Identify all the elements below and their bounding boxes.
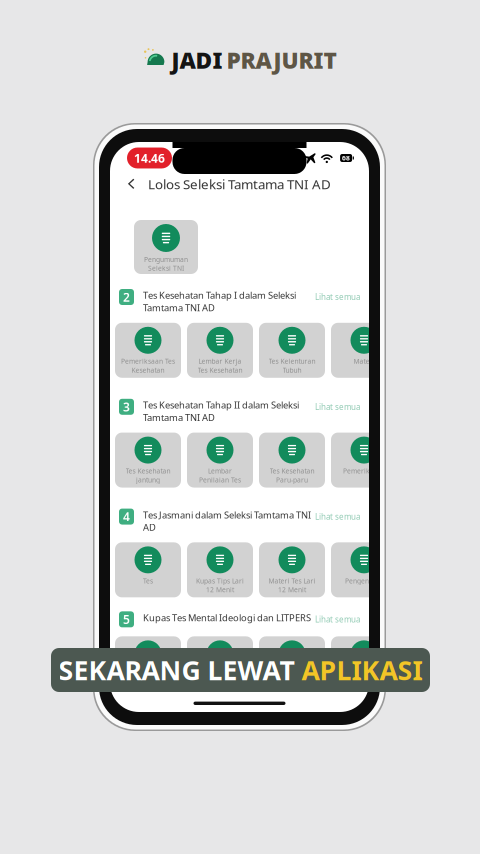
staticText: Seleksi TNI	[148, 264, 184, 273]
staticText: Tes Kesehatan Tahap II dalam Seleksi Tam…	[143, 399, 299, 424]
staticText: Materi Tes Lari	[268, 576, 315, 585]
button[interactable]: Tes Kesehatan	[259, 433, 325, 488]
button[interactable]: Latihan	[331, 636, 397, 691]
staticText: 12 Menit	[206, 585, 234, 594]
staticText: PRAJURIT	[226, 45, 336, 75]
staticText: Tes Kesehatan Tahap I dalam Seleksi Tamt…	[143, 289, 296, 314]
button[interactable]: Tes Mental	[115, 636, 181, 691]
staticText: Kupas Tes Mental Ideologi dan LITPERS	[143, 611, 311, 624]
staticText: Pengenalan	[345, 576, 383, 585]
staticText: Tes Jasmani dalam Seleksi Tamtama TNI AD	[143, 509, 311, 533]
staticText: Lembar	[208, 467, 232, 475]
staticText: Tes	[143, 576, 153, 585]
button[interactable]: Materi LITPERS	[187, 636, 253, 691]
staticText: 5	[123, 611, 130, 627]
button[interactable]: Lihat semua	[315, 509, 360, 525]
button[interactable]: Tips Lolos	[259, 636, 325, 691]
staticText: Penilaian Tes	[199, 475, 241, 484]
staticText: Tubuh	[282, 366, 301, 374]
staticText: 3	[123, 399, 130, 415]
button[interactable]: Kupas Tips Lari	[187, 542, 253, 597]
staticText: SEKARANG LEWAT	[58, 652, 301, 688]
staticText: Materi	[353, 357, 374, 366]
staticText: Pemeriksaan Tes	[121, 357, 175, 366]
staticText: Tes Kelenturan	[268, 357, 315, 366]
button[interactable]: Tes Kesehatan	[115, 433, 181, 488]
button[interactable]: Materi Tes Lari	[259, 542, 325, 597]
button[interactable]: Pemeriksaan Tes	[115, 323, 181, 378]
button[interactable]: Materi	[331, 323, 397, 378]
button[interactable]: Back	[118, 171, 144, 197]
staticText: Lihat semua	[315, 401, 360, 412]
staticText: 2	[123, 289, 130, 305]
staticText: Tes Mental	[131, 670, 165, 679]
staticText: jantung	[136, 475, 160, 484]
staticText: Tes Kesehatan	[197, 366, 242, 374]
button[interactable]: Lihat semua	[315, 611, 360, 627]
button[interactable]: Lihat semua	[315, 289, 360, 305]
button[interactable]: Lihat semua	[315, 399, 360, 415]
staticText: Kesehatan	[131, 366, 164, 374]
staticText: LITPERS	[279, 679, 304, 688]
staticText: Tips Lolos	[276, 670, 307, 679]
button[interactable]: Lembar	[187, 433, 253, 488]
staticText: Lolos Seleksi Tamtama TNI AD	[148, 175, 331, 193]
staticText: Lembar Kerja	[198, 357, 241, 366]
button[interactable]: Tes	[115, 542, 181, 597]
staticText: Latihan	[352, 670, 375, 679]
staticText: JADI	[171, 45, 222, 75]
staticText: Ideologi	[135, 679, 161, 688]
button[interactable]: Pengumuman	[134, 220, 198, 274]
staticText: Pemeriksaan	[343, 467, 385, 475]
staticText: Tes Kesehatan	[269, 467, 314, 475]
button[interactable]: Tes Kelenturan	[259, 323, 325, 378]
staticText: 14.46	[134, 150, 165, 166]
staticText: Kupas Tips Lari	[196, 576, 244, 585]
button[interactable]: Lembar Kerja	[187, 323, 253, 378]
staticText: Materi LITPERS	[196, 670, 244, 679]
staticText: Pengumuman	[144, 255, 188, 264]
staticText: APLIKASI	[301, 652, 422, 688]
staticText: Lihat semua	[315, 292, 360, 302]
staticText: Lihat semua	[315, 614, 360, 625]
button[interactable]: Pengenalan	[331, 542, 397, 597]
staticText: Tes Kesehatan	[125, 467, 170, 475]
staticText: 4	[123, 509, 130, 524]
staticText: 68	[342, 154, 350, 162]
staticText: 12 Menit	[278, 585, 306, 594]
staticText: Lihat semua	[315, 511, 360, 522]
button[interactable]: Pemeriksaan	[331, 433, 397, 488]
staticText: Paru-paru	[276, 475, 308, 484]
